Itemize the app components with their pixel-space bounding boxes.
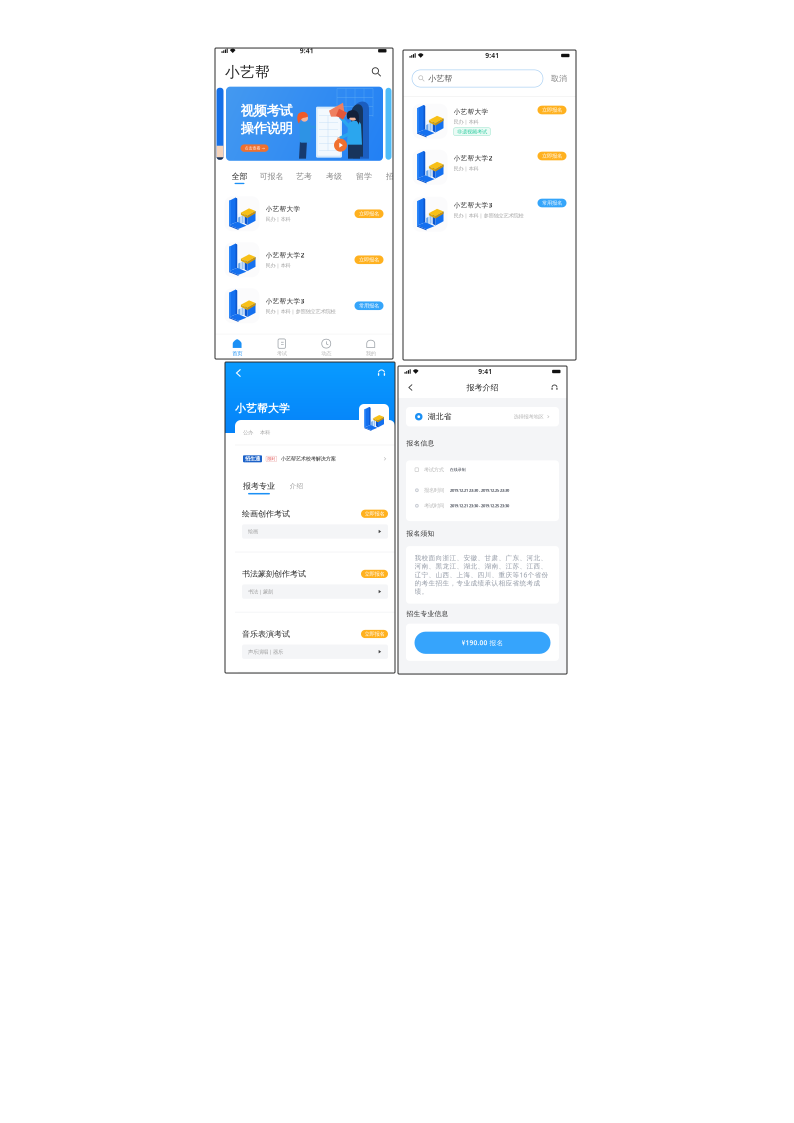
staticText: 限时	[267, 456, 275, 461]
button[interactable]: ¥190.00 报名	[414, 632, 550, 654]
button[interactable]: 我的	[348, 338, 393, 357]
staticText: 音乐表演考试	[242, 629, 290, 639]
staticText: 小艺帮	[225, 63, 270, 81]
staticText: 湖北省	[427, 412, 451, 422]
button[interactable]: 书法 | 篆刻	[242, 584, 388, 599]
button[interactable]: 取消	[551, 74, 567, 83]
button[interactable]: 小艺帮大学3	[215, 283, 393, 329]
button[interactable]: 绘画	[242, 524, 388, 539]
button[interactable]: 返回	[232, 366, 245, 379]
staticText: 民办 | 本科	[453, 118, 478, 125]
staticText: 9:41	[485, 51, 499, 60]
staticText: 小艺帮艺术校考解决方案	[281, 455, 336, 462]
staticText: 视频考试	[240, 103, 292, 119]
staticText: 全部	[231, 171, 247, 181]
staticText: 可报名	[259, 171, 283, 181]
staticText: 小艺帮大学	[265, 205, 300, 213]
staticText: 选择报考地区	[514, 413, 544, 420]
button[interactable]: 返回	[405, 382, 416, 393]
staticText: 常用报名	[542, 200, 562, 206]
staticText: 操作说明	[240, 120, 292, 136]
staticText: 取消	[551, 74, 567, 83]
staticText: 报考介绍	[466, 383, 498, 392]
button[interactable]: 留学	[356, 171, 372, 184]
staticText: 艺考	[296, 171, 312, 181]
button[interactable]: 湖北省	[406, 407, 559, 426]
staticText: 小艺帮大学3	[453, 201, 492, 209]
button[interactable]: 声乐演唱 | 器乐	[242, 644, 388, 659]
staticText: 2019.12.21 23:30 - 2019.12.25 23:30	[450, 488, 509, 493]
button[interactable]: 可报名	[259, 171, 283, 184]
staticText: 首页	[232, 350, 242, 357]
staticText: 立即报名	[359, 256, 379, 263]
button[interactable]: 全部	[231, 171, 247, 184]
staticText: 常用报名	[359, 302, 379, 309]
staticText: 民办 | 本科 | 参照独立艺术院校	[453, 212, 523, 219]
button[interactable]: 艺考	[296, 171, 312, 184]
staticText: 声乐演唱 | 器乐	[248, 648, 283, 655]
staticText: 绘画创作考试	[242, 509, 290, 519]
button[interactable]: 考级	[326, 171, 342, 184]
staticText: 留学	[356, 171, 372, 181]
staticText: 民办 | 本科 | 参照独立艺术院校	[265, 308, 335, 315]
staticText: 立即报名	[364, 510, 384, 517]
staticText: ¥190.00 报名	[461, 638, 503, 647]
staticText: 点击查看 →	[244, 146, 264, 151]
staticText: 立即报名	[542, 153, 562, 159]
staticText: 小艺帮大学	[453, 108, 488, 116]
staticText: 招聘	[386, 171, 402, 181]
staticText: 小艺帮大学2	[265, 251, 304, 259]
button[interactable]: 小艺帮大学	[403, 101, 576, 147]
button[interactable]: 小艺帮大学2	[403, 147, 576, 194]
staticText: 招生通	[245, 455, 260, 462]
staticText: 考试方式	[424, 466, 444, 473]
staticText: 2019.12.21 23:30 - 2019.12.25 23:30	[450, 503, 509, 508]
staticText: 非遗视频考试	[457, 128, 487, 135]
staticText: 公办	[243, 429, 253, 436]
staticText: 小艺帮大学	[235, 402, 290, 415]
staticText: 绘画	[248, 528, 258, 535]
button[interactable]: 小艺帮大学2	[215, 237, 393, 283]
staticText: 民办 | 本科	[265, 262, 290, 269]
staticText: 介绍	[289, 482, 303, 490]
staticText: 书法篆刻创作考试	[242, 569, 306, 579]
staticText: 报考专业	[243, 481, 275, 491]
staticText: 报名信息	[406, 439, 434, 447]
staticText: 动态	[321, 350, 331, 357]
button[interactable]: 动态	[304, 338, 348, 357]
button[interactable]: 考试	[259, 338, 304, 357]
staticText: 民办 | 本科	[265, 215, 290, 223]
button[interactable]: 首页	[215, 338, 259, 357]
staticText: 招生专业信息	[406, 610, 448, 618]
staticText: 在线录制	[450, 467, 466, 472]
staticText: 报名时间	[424, 487, 444, 494]
button[interactable]: 小艺帮大学	[215, 191, 393, 237]
staticText: 我的	[366, 350, 376, 357]
staticText: 立即报名	[542, 107, 562, 113]
button[interactable]: 客服	[549, 382, 560, 393]
staticText: 考试	[277, 350, 287, 357]
staticText: 立即报名	[364, 631, 384, 637]
staticText: 立即报名	[364, 571, 384, 577]
staticText: 9:41	[478, 367, 492, 376]
staticText: 小艺帮大学3	[265, 297, 304, 305]
button[interactable]: 招生通	[235, 445, 395, 472]
staticText: 书法 | 篆刻	[248, 588, 273, 595]
staticText: 考试时间	[424, 502, 444, 509]
staticText: 我校面向浙江、安徽、甘肃、广东、河北、河南、黑龙江、湖北、湖南、江苏、江西、辽宁…	[414, 554, 548, 596]
staticText: 本科	[260, 429, 270, 436]
staticText: 立即报名	[359, 210, 379, 217]
button[interactable]: 招聘	[386, 171, 402, 184]
button[interactable]: 客服	[375, 366, 388, 379]
staticText: 考级	[326, 171, 342, 181]
staticText: 小艺帮大学2	[453, 154, 492, 162]
staticText: 报名须知	[406, 529, 434, 538]
staticText: 民办 | 本科	[453, 165, 478, 172]
staticText: 9:41	[300, 46, 314, 55]
staticText: 小艺帮	[428, 74, 452, 83]
button[interactable]: 小艺帮大学3	[403, 194, 576, 241]
button[interactable]: 搜索	[370, 65, 383, 78]
